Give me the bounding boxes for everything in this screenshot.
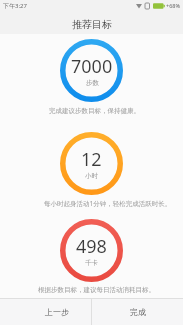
staticText: 完成: [130, 307, 146, 317]
staticText: +68%: [166, 2, 181, 9]
staticText: 498: [76, 234, 107, 259]
staticText: 完成建议步数目标，保持健康。: [49, 107, 140, 115]
staticText: 推荐目标: [72, 18, 112, 31]
staticText: 下午3:27: [3, 2, 27, 10]
staticText: 12: [81, 147, 102, 172]
staticText: 千卡: [85, 259, 98, 267]
staticText: 步数: [86, 79, 99, 87]
staticText: 上一步: [45, 307, 69, 317]
staticText: 7000: [71, 54, 113, 79]
staticText: 小时: [85, 172, 98, 180]
staticText: 每小时起身活动1分钟，轻松完成活跃时长。: [44, 199, 172, 208]
staticText: 根据步数目标，建议每日活动消耗目标。: [38, 286, 155, 294]
